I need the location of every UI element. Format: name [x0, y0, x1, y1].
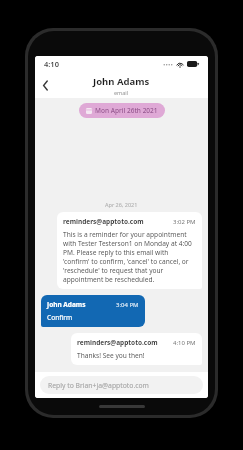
staticText: Confirm — [47, 313, 73, 322]
staticText: This is a reminder for your appointment … — [63, 230, 196, 284]
staticText: Reply to Brian+ja@apptoto.com — [48, 381, 149, 390]
staticText: Thanks! See you then! — [77, 351, 145, 360]
staticText: reminders@apptoto.com — [63, 217, 144, 226]
staticText: Apr 26, 2021 — [105, 201, 138, 208]
button[interactable]: Reply to Brian+ja@apptoto.com — [40, 376, 203, 394]
button[interactable]: Mon April 26th 2021 — [79, 103, 165, 118]
staticText: Mon April 26th 2021 — [95, 106, 158, 115]
staticText: John Adams — [93, 75, 150, 88]
staticText: 3:02 PM — [173, 218, 196, 226]
staticText: reminders@apptoto.com — [77, 338, 158, 347]
staticText: email — [114, 89, 129, 96]
button[interactable]: John Adams — [41, 295, 145, 327]
button[interactable]: reminders@apptoto.com — [71, 333, 202, 365]
button[interactable]: reminders@apptoto.com — [57, 212, 202, 289]
button[interactable]: Back — [35, 75, 55, 95]
staticText: John Adams — [47, 300, 86, 309]
staticText: 4:10 — [44, 59, 59, 69]
staticText: 4:10 PM — [173, 339, 196, 347]
staticText: 3:04 PM — [116, 301, 139, 309]
